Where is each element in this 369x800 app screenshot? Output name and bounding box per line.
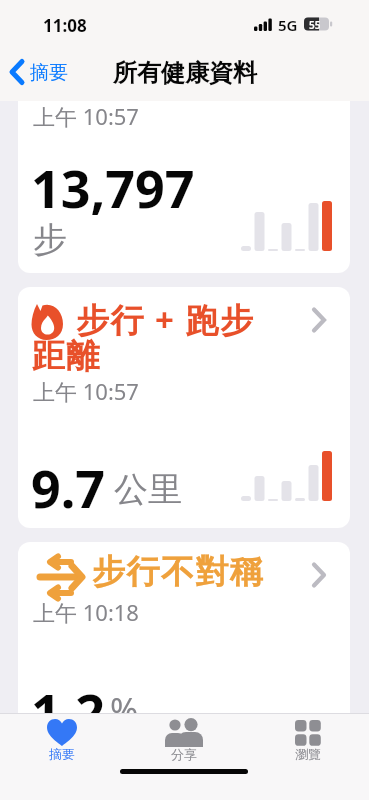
button[interactable] [18, 542, 350, 800]
staticText: % [110, 687, 139, 733]
staticText: 距離 [31, 335, 100, 377]
staticText: 摘要 [30, 61, 68, 85]
staticText: 上午 10:57 [33, 376, 139, 406]
staticText: 5G [278, 15, 298, 35]
staticText: 9.7 [31, 452, 106, 523]
staticText: 摘要 [49, 746, 75, 762]
staticText: 步行不對稱 [92, 551, 265, 593]
button[interactable] [276, 714, 340, 766]
staticText: 瀏覽 [295, 746, 321, 762]
button[interactable] [6, 55, 76, 91]
button[interactable] [18, 101, 350, 273]
staticText: 13,797 [31, 152, 195, 223]
staticText: 步行 + 跑步 [76, 297, 255, 342]
staticText: 11:08 [43, 14, 87, 37]
staticText: 步 [33, 218, 67, 261]
staticText: 上午 10:18 [33, 597, 139, 627]
button[interactable] [18, 287, 350, 528]
button[interactable] [152, 714, 216, 766]
staticText: 1.2 [31, 676, 106, 747]
button[interactable] [30, 714, 94, 766]
staticText: 公里 [114, 468, 182, 511]
staticText: 55 [309, 18, 321, 32]
staticText: 所有健康資料 [113, 58, 257, 88]
staticText: 上午 10:57 [33, 101, 139, 131]
staticText: 分享 [171, 746, 197, 762]
